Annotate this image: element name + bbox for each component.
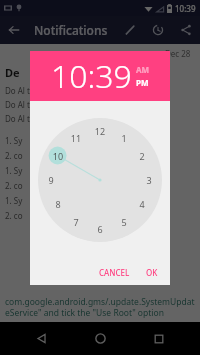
button[interactable]: Back [25, 322, 58, 355]
button[interactable]: Edit [116, 16, 144, 44]
staticText: 10:39 [51, 54, 132, 98]
staticText: 1. Sy [5, 135, 23, 146]
staticText: Do Al th [5, 113, 35, 124]
staticText: 2. co [5, 210, 23, 221]
staticText: 10:39 [175, 3, 196, 14]
staticText: De [5, 65, 20, 80]
staticText: 10 [49, 150, 67, 162]
staticText: Do Al th [5, 85, 35, 96]
staticText: 5 [115, 216, 133, 228]
button[interactable]: PM [136, 77, 149, 88]
staticText: 4 [133, 198, 151, 210]
button[interactable]: Clock face, select hour [38, 118, 162, 242]
button[interactable]: CANCEL [93, 263, 136, 282]
button[interactable]: Share [172, 16, 200, 44]
staticText: 1 [115, 132, 133, 144]
staticText: 7 [67, 216, 85, 228]
staticText: Notifications [34, 22, 108, 38]
staticText: 6 [91, 223, 109, 235]
button[interactable]: AM [136, 64, 150, 75]
button[interactable]: Recents [142, 322, 175, 355]
staticText: 2. co [5, 150, 23, 161]
button[interactable]: Back [0, 16, 28, 44]
staticText: 2 [133, 150, 151, 162]
staticText: Do Al th [5, 99, 35, 110]
staticText: 1. Sy [5, 165, 23, 176]
staticText: OK [146, 267, 158, 278]
button[interactable]: 10:39 [30, 51, 170, 101]
staticText: 8 [49, 198, 67, 210]
button[interactable]: History [144, 16, 172, 44]
staticText: 1. Sy [5, 195, 23, 206]
staticText: 12 [91, 125, 109, 137]
staticText: com.google.android.gms/.update.SystemUpd… [5, 296, 195, 318]
button[interactable]: Home [84, 322, 117, 355]
button[interactable]: OK [140, 263, 164, 282]
staticText: 2. co [5, 180, 23, 191]
staticText: CANCEL [99, 267, 130, 278]
staticText: 3 [140, 174, 158, 186]
staticText: 11 [67, 132, 85, 144]
staticText: 9 [42, 174, 60, 186]
staticText: Dec 28 [165, 48, 191, 59]
